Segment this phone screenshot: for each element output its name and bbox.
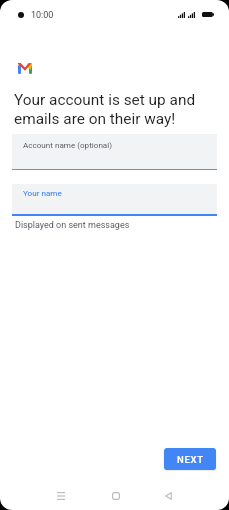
staticText: 10:00 <box>31 10 54 21</box>
button[interactable]: Recent apps <box>46 481 75 510</box>
button[interactable]: NEXT <box>164 448 216 470</box>
staticText: Your name <box>23 188 62 197</box>
staticText: NEXT <box>177 454 204 465</box>
button[interactable]: Account name (optional) <box>12 134 217 170</box>
button[interactable]: Your name <box>12 184 217 216</box>
staticText: Your account is set up and emails are on… <box>14 91 196 127</box>
button[interactable]: Back <box>154 481 183 510</box>
staticText: Displayed on sent messages <box>15 220 130 231</box>
button[interactable]: Home <box>101 481 130 510</box>
staticText: Account name (optional) <box>23 140 113 149</box>
